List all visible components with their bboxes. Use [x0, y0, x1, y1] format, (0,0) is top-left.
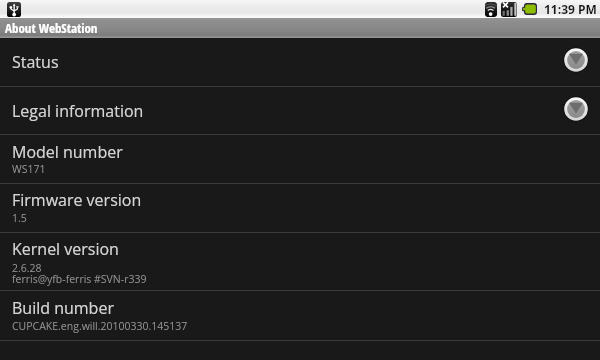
staticText: 1.5 — [12, 211, 27, 225]
staticText: Legal information — [12, 100, 144, 122]
button[interactable]: Build number — [0, 291, 600, 340]
button[interactable]: Legal information — [0, 87, 600, 134]
button[interactable]: Expand — [563, 47, 589, 73]
staticText: 11:39 PM — [544, 1, 597, 17]
staticText: Firmware version — [12, 189, 142, 211]
button[interactable]: Model number — [0, 135, 600, 183]
staticText: Model number — [12, 141, 123, 163]
button[interactable]: Status — [0, 38, 600, 86]
staticText: About WebStation — [5, 19, 98, 37]
staticText: Kernel version — [12, 238, 119, 260]
staticText: WS171 — [12, 162, 46, 176]
button[interactable]: Firmware version — [0, 184, 600, 232]
staticText: ferris@yfb-ferris #SVN-r339 — [12, 272, 147, 286]
staticText: Build number — [12, 297, 114, 319]
staticText: CUPCAKE.eng.will.20100330.145137 — [12, 319, 188, 333]
staticText: Status — [12, 51, 59, 73]
staticText: 2.6.28 — [12, 261, 42, 275]
button[interactable]: Expand — [563, 96, 589, 122]
button[interactable]: Kernel version — [0, 233, 600, 290]
